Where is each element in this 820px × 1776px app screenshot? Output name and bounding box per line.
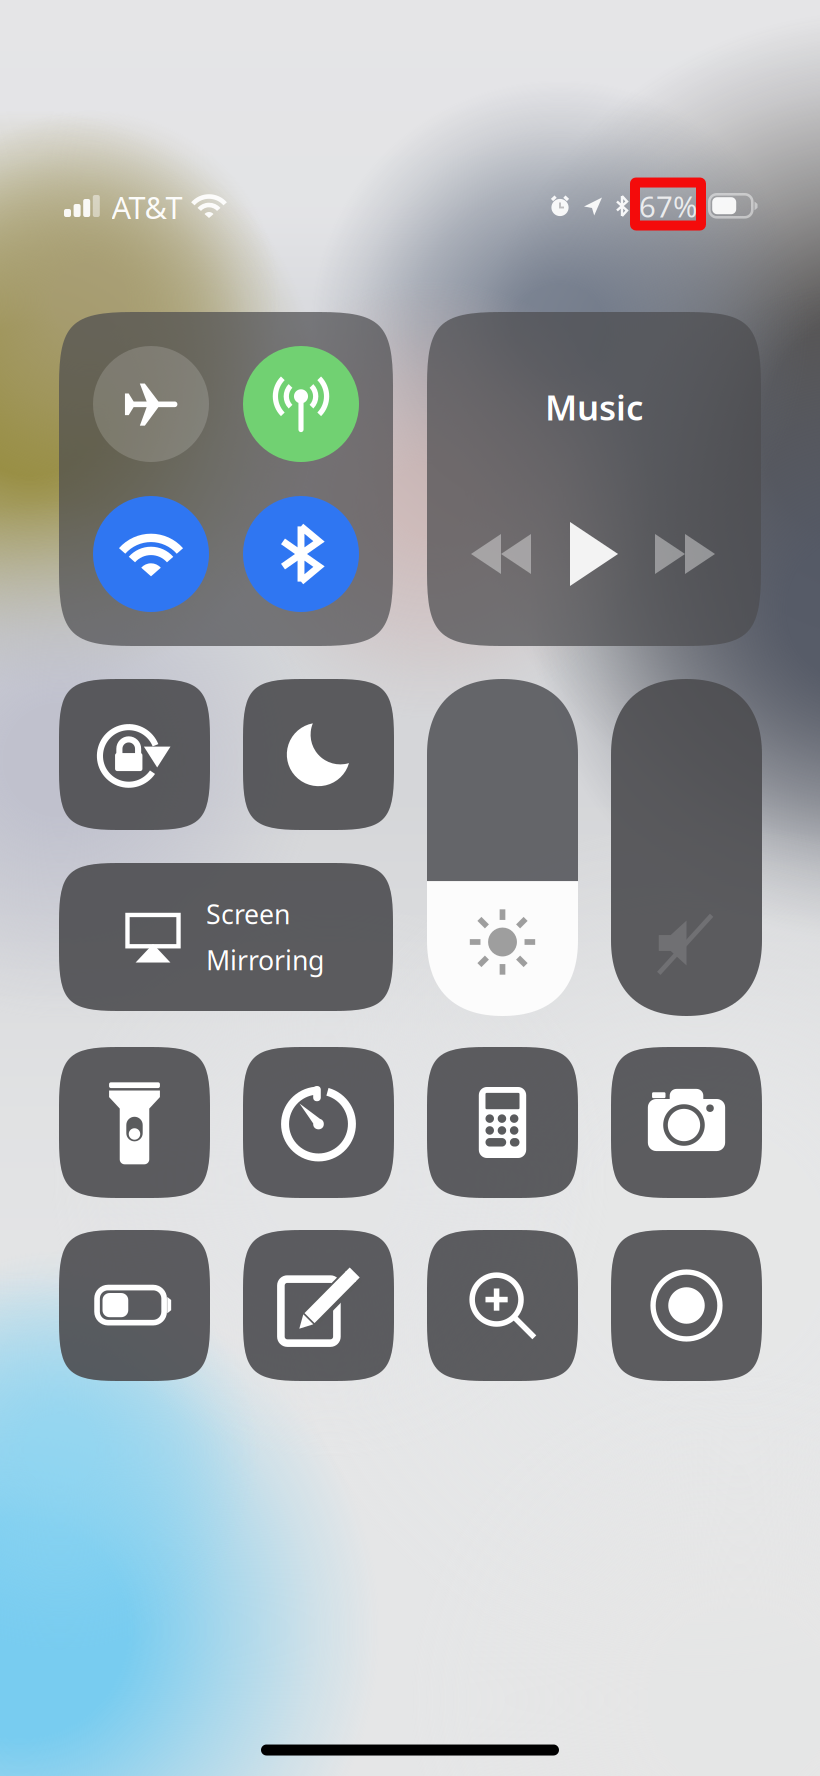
staticText: Mirroring xyxy=(206,942,324,978)
button[interactable]: Music xyxy=(427,312,761,646)
button[interactable]: Bluetooth xyxy=(243,496,359,612)
button[interactable]: Airplane Mode xyxy=(93,346,209,462)
staticText: Screen xyxy=(206,896,290,932)
button[interactable] xyxy=(59,1047,210,1198)
button[interactable]: Brightness xyxy=(427,679,578,1016)
button[interactable] xyxy=(243,1047,394,1198)
button[interactable]: Cellular Data xyxy=(243,346,359,462)
button[interactable] xyxy=(427,1230,578,1381)
button[interactable] xyxy=(427,1047,578,1198)
button[interactable] xyxy=(611,1230,762,1381)
staticText: Music xyxy=(545,384,643,430)
staticText: 67% xyxy=(639,186,697,225)
button[interactable]: Volume xyxy=(611,679,762,1016)
button[interactable] xyxy=(611,1047,762,1198)
button[interactable]: Screen xyxy=(59,863,393,1011)
button[interactable] xyxy=(243,1230,394,1381)
button[interactable] xyxy=(59,1230,210,1381)
staticText: AT&T xyxy=(111,187,182,227)
button[interactable]: Wi-Fi xyxy=(93,496,209,612)
button[interactable] xyxy=(59,679,210,830)
button[interactable] xyxy=(243,679,394,830)
